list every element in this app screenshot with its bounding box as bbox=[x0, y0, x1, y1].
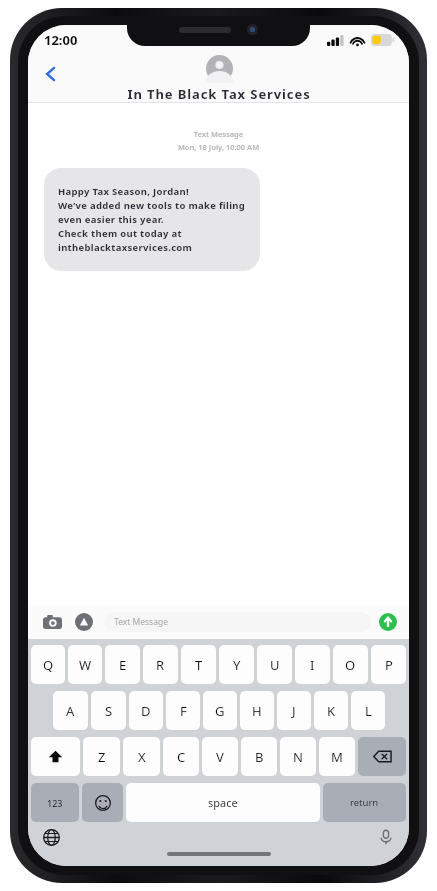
button[interactable]: B bbox=[241, 737, 277, 776]
button[interactable]: L bbox=[351, 691, 385, 730]
staticText: Q bbox=[43, 656, 54, 674]
staticText: Happy Tax Season, Jordan! We’ve added ne… bbox=[58, 185, 246, 254]
staticText: F bbox=[180, 702, 187, 720]
button[interactable]: E bbox=[105, 645, 140, 684]
button[interactable]: U bbox=[257, 645, 292, 684]
button[interactable]: In The Black Tax Services bbox=[127, 55, 311, 103]
button[interactable]: K bbox=[314, 691, 348, 730]
staticText: E bbox=[119, 656, 127, 674]
button[interactable]: T bbox=[181, 645, 216, 684]
button[interactable]: Apps bbox=[72, 610, 96, 634]
staticText: N bbox=[293, 748, 303, 766]
staticText: In The Black Tax Services bbox=[127, 85, 311, 103]
staticText: T bbox=[195, 656, 203, 674]
button[interactable]: J bbox=[277, 691, 311, 730]
staticText: space bbox=[208, 795, 238, 810]
button[interactable]: M bbox=[319, 737, 355, 776]
button[interactable]: Q bbox=[31, 645, 65, 684]
staticText: I bbox=[310, 656, 315, 674]
staticText: H bbox=[252, 702, 262, 720]
button[interactable]: C bbox=[163, 737, 199, 776]
staticText: A bbox=[66, 702, 75, 720]
button[interactable]: G bbox=[203, 691, 237, 730]
staticText: X bbox=[138, 748, 146, 766]
button[interactable]: Back bbox=[34, 57, 68, 91]
staticText: G bbox=[215, 702, 225, 720]
button[interactable]: space bbox=[126, 783, 320, 822]
button[interactable]: Y bbox=[219, 645, 254, 684]
staticText: P bbox=[385, 656, 393, 674]
button[interactable]: S bbox=[91, 691, 126, 730]
button[interactable]: A bbox=[53, 691, 88, 730]
button[interactable]: Happy Tax Season, Jordan! We’ve added ne… bbox=[44, 168, 260, 271]
staticText: S bbox=[105, 702, 113, 720]
staticText: K bbox=[327, 702, 336, 720]
button[interactable]: H bbox=[240, 691, 274, 730]
staticText: Mon, 18 July, 10:00 AM bbox=[28, 142, 409, 152]
button[interactable]: W bbox=[68, 645, 102, 684]
button[interactable]: return bbox=[323, 783, 406, 822]
button[interactable]: F bbox=[166, 691, 200, 730]
staticText: U bbox=[270, 656, 280, 674]
staticText: Text Message bbox=[114, 616, 168, 628]
staticText: 123 bbox=[47, 797, 63, 809]
button[interactable]: O bbox=[333, 645, 368, 684]
staticText: 12:00 bbox=[44, 31, 78, 49]
staticText: V bbox=[216, 748, 224, 766]
staticText: Z bbox=[98, 748, 106, 766]
button[interactable]: V bbox=[202, 737, 238, 776]
button[interactable]: D bbox=[129, 691, 163, 730]
staticText: B bbox=[255, 748, 264, 766]
button[interactable]: Text Message bbox=[104, 612, 371, 632]
button[interactable]: Z bbox=[83, 737, 120, 776]
button[interactable]: Change keyboard bbox=[40, 826, 62, 848]
staticText: J bbox=[292, 702, 296, 720]
staticText: O bbox=[345, 656, 356, 674]
button[interactable]: 123 bbox=[31, 783, 79, 822]
staticText: D bbox=[141, 702, 151, 720]
staticText: Text Message bbox=[28, 129, 409, 139]
button[interactable]: Dictation bbox=[375, 826, 397, 848]
button[interactable]: R bbox=[143, 645, 178, 684]
staticText: return bbox=[350, 796, 379, 809]
staticText: M bbox=[331, 748, 343, 766]
button[interactable]: X bbox=[123, 737, 160, 776]
button[interactable]: I bbox=[295, 645, 330, 684]
button[interactable]: Shift bbox=[31, 737, 80, 776]
button[interactable]: Backspace bbox=[358, 737, 406, 776]
staticText: R bbox=[156, 656, 165, 674]
button[interactable]: N bbox=[280, 737, 316, 776]
button[interactable]: P bbox=[371, 645, 406, 684]
button[interactable]: Camera bbox=[40, 610, 64, 634]
staticText: C bbox=[177, 748, 186, 766]
staticText: L bbox=[365, 702, 372, 720]
staticText: Y bbox=[233, 656, 241, 674]
button[interactable]: Send bbox=[379, 613, 397, 631]
staticText: W bbox=[79, 656, 92, 674]
button[interactable]: Emoji bbox=[82, 783, 123, 822]
